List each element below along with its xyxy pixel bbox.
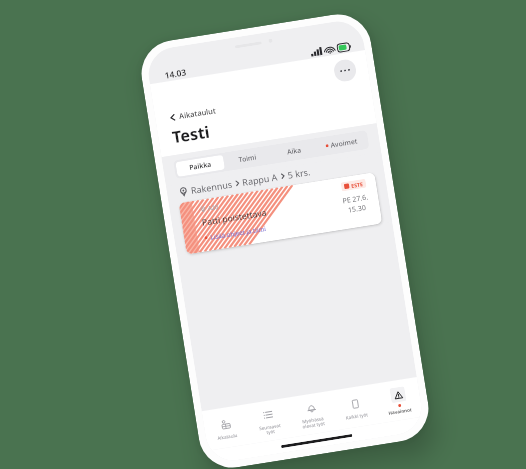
button[interactable]: Aika [269, 140, 318, 162]
staticText: Testi [171, 120, 212, 148]
staticText: Patti poistettava [201, 207, 267, 229]
staticText: PE 27.6. [342, 192, 369, 206]
button[interactable]: Rakennus [178, 154, 383, 198]
staticText: Rappu A [241, 170, 279, 188]
staticText: 14.03 [164, 66, 187, 82]
button[interactable]: Seuraavat työt [244, 398, 293, 444]
button[interactable]: Toimi [223, 147, 271, 169]
staticText: 5 krs. [287, 165, 311, 181]
button[interactable]: Lisää ohjeet ja tiimi [204, 224, 266, 241]
button[interactable]: Myöhässä olevat työt [286, 391, 336, 437]
staticText: ESTE [351, 180, 363, 189]
button[interactable]: Havainnot [373, 377, 423, 423]
staticText: Myöhässä olevat työt [301, 415, 326, 431]
button[interactable]: Paikka [175, 155, 225, 177]
staticText: Seuraavat työt [258, 422, 282, 437]
staticText: Lisää ohjeet ja tiimi [210, 224, 266, 241]
staticText: 15.30 [347, 203, 367, 216]
button[interactable]: Avoimet [316, 132, 367, 155]
staticText: Avoimet [330, 136, 358, 150]
staticText: Toimi [238, 152, 257, 164]
staticText: Rakennus [190, 178, 233, 196]
staticText: Havainnot [388, 406, 412, 416]
staticText: Aikataulut [178, 105, 216, 121]
staticText: Kaikki työt [345, 411, 369, 421]
button[interactable]: A20 [179, 172, 382, 254]
button[interactable]: More options [332, 58, 358, 83]
button[interactable]: Aikataulut [168, 81, 372, 122]
staticText: Aika [286, 145, 302, 156]
button[interactable]: Aikataulu [202, 404, 250, 451]
staticText: Paikka [189, 159, 213, 172]
staticText: A20 [207, 203, 219, 213]
button[interactable]: Kaikki työt [330, 384, 380, 430]
staticText: Aikataulu [216, 432, 238, 441]
